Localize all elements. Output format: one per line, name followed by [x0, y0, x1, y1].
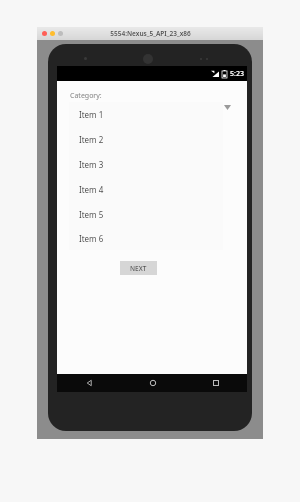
- button[interactable]: Zoom: [58, 31, 63, 36]
- staticText: NEXT: [130, 264, 147, 273]
- button[interactable]: Item 6: [69, 227, 223, 250]
- button[interactable]: Home: [121, 374, 184, 392]
- staticText: Category:: [70, 91, 102, 101]
- button[interactable]: NEXT: [120, 261, 157, 275]
- button[interactable]: Item 2: [69, 127, 223, 152]
- staticText: Item 1: [79, 109, 104, 120]
- button[interactable]: Back: [57, 374, 121, 392]
- button[interactable]: Item 5: [69, 202, 223, 227]
- staticText: Item 6: [79, 233, 104, 244]
- button[interactable]: Item 1: [69, 102, 223, 127]
- button[interactable]: Recent apps: [184, 374, 247, 392]
- button[interactable]: Minimize: [50, 31, 55, 36]
- staticText: Item 3: [79, 159, 104, 170]
- button[interactable]: Item 4: [69, 177, 223, 202]
- staticText: 5:23: [230, 69, 244, 79]
- button[interactable]: Close: [42, 31, 47, 36]
- button[interactable]: Item 3: [69, 152, 223, 177]
- staticText: Item 2: [79, 134, 104, 145]
- staticText: Item 4: [79, 184, 104, 195]
- staticText: 5554:Nexus_5_API_23_x86: [110, 29, 191, 38]
- staticText: Item 5: [79, 209, 104, 220]
